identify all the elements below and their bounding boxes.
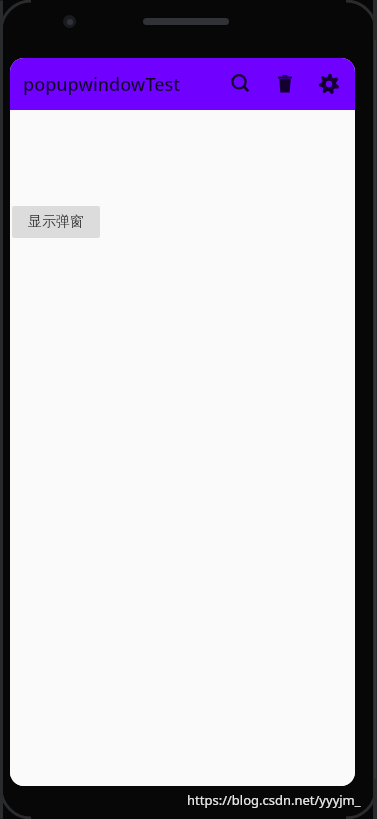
staticText: popupwindowTest	[23, 72, 181, 97]
staticText: https://blog.csdn.net/yyyjm_	[187, 791, 361, 809]
button[interactable]: Delete	[263, 62, 307, 106]
button[interactable]: 显示弹窗	[12, 206, 100, 238]
button[interactable]: Settings	[307, 62, 351, 106]
staticText: 显示弹窗	[28, 213, 84, 231]
button[interactable]: Search	[219, 62, 263, 106]
